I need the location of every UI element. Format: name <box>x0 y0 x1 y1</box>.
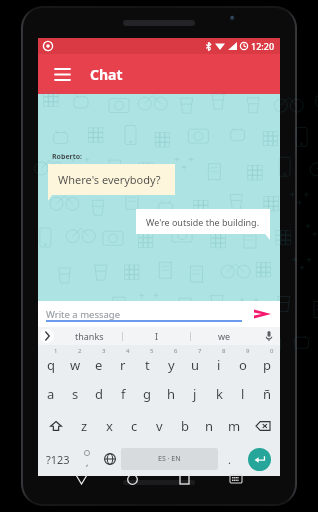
button[interactable]: l <box>231 378 255 410</box>
button[interactable]: Home <box>107 468 158 490</box>
staticText: y <box>168 356 175 374</box>
button[interactable]: m <box>222 410 247 442</box>
staticText: r <box>120 356 126 374</box>
button[interactable]: 8 <box>207 345 231 378</box>
staticText: ?123 <box>46 452 70 467</box>
staticText: x <box>106 417 113 435</box>
staticText: e <box>95 356 103 374</box>
staticText: h <box>167 385 176 403</box>
button[interactable]: n <box>197 410 222 442</box>
staticText: j <box>193 385 197 403</box>
button[interactable]: Write a message <box>46 308 242 321</box>
staticText: n <box>205 417 214 435</box>
staticText: b <box>181 417 189 435</box>
staticText: 1 <box>54 347 58 355</box>
button[interactable]: Send message <box>250 305 274 323</box>
button[interactable]: Change language <box>98 442 121 476</box>
button[interactable]: Shift <box>39 410 72 442</box>
button[interactable]: 3 <box>87 345 111 378</box>
staticText: 9 <box>246 347 250 355</box>
button[interactable]: c <box>122 410 147 442</box>
button[interactable]: 6 <box>159 345 183 378</box>
staticText: p <box>263 356 271 374</box>
button[interactable]: j <box>183 378 207 410</box>
button[interactable]: 7 <box>183 345 207 378</box>
staticText: z <box>81 417 88 435</box>
staticText: a <box>47 385 55 403</box>
staticText: Roberto: <box>52 152 83 162</box>
button[interactable]: z <box>72 410 97 442</box>
button[interactable]: 4 <box>111 345 135 378</box>
staticText: I <box>155 330 159 342</box>
button[interactable]: x <box>97 410 122 442</box>
staticText: g <box>143 385 151 403</box>
staticText: v <box>156 417 163 435</box>
staticText: m <box>228 417 241 435</box>
button[interactable]: ñ <box>255 378 279 410</box>
button[interactable]: Switch keyboard <box>210 468 262 490</box>
staticText: w <box>70 356 81 374</box>
button[interactable]: 9 <box>231 345 255 378</box>
staticText: t <box>145 356 150 374</box>
button[interactable]: We're outside the building. <box>136 209 270 240</box>
button[interactable]: Where's everybody? <box>48 164 175 201</box>
staticText: s <box>72 385 79 403</box>
staticText: . <box>228 452 231 467</box>
staticText: Where's everybody? <box>58 172 161 187</box>
staticText: q <box>47 356 55 374</box>
staticText: d <box>95 385 103 403</box>
staticText: 8 <box>222 347 226 355</box>
button[interactable]: 0 <box>255 345 279 378</box>
staticText: 3 <box>102 347 106 355</box>
staticText: 2 <box>78 347 82 355</box>
staticText: thanks <box>75 330 104 342</box>
button[interactable]: g <box>135 378 159 410</box>
button[interactable]: . <box>218 442 241 476</box>
button[interactable]: s <box>63 378 87 410</box>
staticText: f <box>121 385 126 403</box>
button[interactable]: 5 <box>135 345 159 378</box>
button[interactable]: f <box>111 378 135 410</box>
staticText: 4 <box>126 347 130 355</box>
button[interactable]: Open navigation menu <box>50 62 74 86</box>
button[interactable]: Recent apps <box>158 468 210 490</box>
staticText: ñ <box>263 385 272 403</box>
staticText: We're outside the building. <box>146 216 260 228</box>
button[interactable]: we <box>191 327 258 345</box>
button[interactable]: Backspace <box>247 410 279 442</box>
staticText: 6 <box>174 347 178 355</box>
staticText: i <box>217 356 221 374</box>
button[interactable]: ES · EN <box>121 448 218 470</box>
staticText: l <box>241 385 245 403</box>
button[interactable]: Voice input <box>262 329 276 343</box>
button[interactable]: More suggestions <box>40 329 54 343</box>
staticText: u <box>191 356 200 374</box>
button[interactable]: Hide keyboard <box>56 468 107 490</box>
button[interactable]: 1 <box>39 345 63 378</box>
button[interactable]: thanks <box>56 327 122 345</box>
button[interactable]: v <box>147 410 172 442</box>
button[interactable]: ?123 <box>40 442 75 476</box>
button[interactable]: I <box>123 327 190 345</box>
staticText: 5 <box>150 347 154 355</box>
staticText: 7 <box>198 347 202 355</box>
staticText: , <box>86 456 89 468</box>
button[interactable]: d <box>87 378 111 410</box>
staticText: Chat <box>90 65 123 84</box>
staticText: o <box>239 356 247 374</box>
button[interactable]: a <box>39 378 63 410</box>
button[interactable]: h <box>159 378 183 410</box>
button[interactable]: Emoji and comma <box>75 442 98 476</box>
button[interactable]: k <box>207 378 231 410</box>
staticText: 12:20 <box>251 40 275 52</box>
staticText: c <box>131 417 138 435</box>
button[interactable]: Enter <box>248 448 271 471</box>
button[interactable]: b <box>172 410 197 442</box>
staticText: Write a message <box>46 308 121 321</box>
staticText: 0 <box>270 347 274 355</box>
staticText: we <box>218 330 231 342</box>
button[interactable]: 2 <box>63 345 87 378</box>
staticText: k <box>216 385 223 403</box>
staticText: ES · EN <box>158 454 181 464</box>
